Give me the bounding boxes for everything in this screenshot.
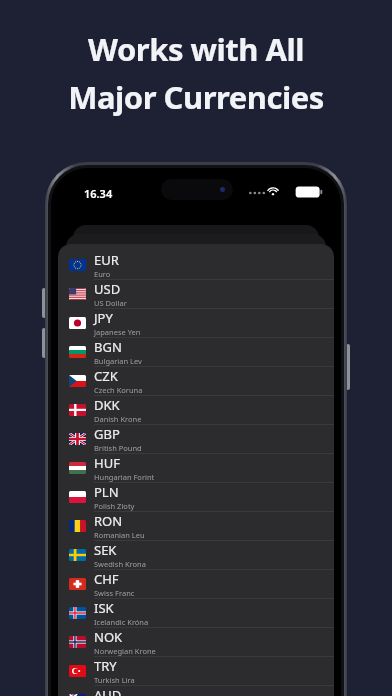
staticText: CZK <box>94 367 118 385</box>
other: no flag <box>69 636 86 648</box>
staticText: Works with All <box>88 28 304 70</box>
other: cz flag <box>69 375 86 387</box>
staticText: Bulgarian Lev <box>94 356 142 366</box>
staticText: ISK <box>94 599 114 617</box>
staticText: Danish Krone <box>94 414 142 424</box>
button[interactable]: jp flag <box>58 308 334 337</box>
button[interactable]: eu flag <box>58 250 334 279</box>
staticText: SEK <box>94 541 117 559</box>
staticText: Romanian Leu <box>94 530 145 540</box>
staticText: TRY <box>94 657 117 675</box>
staticText: Turkish Lira <box>94 675 135 685</box>
staticText: Swiss Franc <box>94 588 135 598</box>
staticText: Polish Zloty <box>94 501 135 511</box>
other: gb flag <box>69 433 86 445</box>
other: hu flag <box>69 462 86 474</box>
staticText: USD <box>94 280 121 298</box>
button[interactable]: pl flag <box>58 482 334 511</box>
staticText: Major Currencies <box>68 76 324 118</box>
button[interactable]: is flag <box>58 598 334 627</box>
staticText: NOK <box>94 628 123 646</box>
staticText: British Pound <box>94 443 142 453</box>
other: bg flag <box>69 346 86 358</box>
staticText: Hungarian Forint <box>94 472 155 482</box>
staticText: PLN <box>94 483 119 501</box>
button[interactable]: no flag <box>58 627 334 656</box>
staticText: CHF <box>94 570 119 588</box>
button[interactable]: ch flag <box>58 569 334 598</box>
other: jp flag <box>69 317 86 329</box>
staticText: Japanese Yen <box>94 327 141 337</box>
staticText: GBP <box>94 425 120 443</box>
button[interactable]: gb flag <box>58 424 334 453</box>
staticText: Euro <box>94 269 111 279</box>
staticText: US Dollar <box>94 298 127 308</box>
button[interactable]: bg flag <box>58 337 334 366</box>
staticText: Czech Koruna <box>94 385 143 395</box>
button[interactable]: ro flag <box>58 511 334 540</box>
button[interactable]: se flag <box>58 540 334 569</box>
other: au flag <box>69 694 86 696</box>
staticText: EUR <box>94 251 119 269</box>
other: pl flag <box>69 491 86 503</box>
other: se flag <box>69 549 86 561</box>
staticText: Swedish Krona <box>94 559 146 569</box>
staticText: DKK <box>94 396 120 414</box>
other: ro flag <box>69 520 86 532</box>
staticText: RON <box>94 512 123 530</box>
staticText: JPY <box>94 309 113 327</box>
staticText: Norwegian Krone <box>94 646 156 656</box>
staticText: AUD <box>94 686 122 696</box>
button[interactable]: au flag <box>58 685 334 696</box>
staticText: BGN <box>94 338 122 356</box>
other: is flag <box>69 607 86 619</box>
other: tr flag <box>69 665 86 677</box>
staticText: Icelandic Króna <box>94 617 149 627</box>
other: eu flag <box>69 259 86 271</box>
button[interactable]: cz flag <box>58 366 334 395</box>
button[interactable]: tr flag <box>58 656 334 685</box>
other: ch flag <box>69 578 86 590</box>
staticText: HUF <box>94 454 120 472</box>
button[interactable]: hu flag <box>58 453 334 482</box>
staticText: 16.34 <box>84 186 113 201</box>
button[interactable]: us flag <box>58 279 334 308</box>
other: dk flag <box>69 404 86 416</box>
button[interactable]: dk flag <box>58 395 334 424</box>
other: us flag <box>69 288 86 300</box>
